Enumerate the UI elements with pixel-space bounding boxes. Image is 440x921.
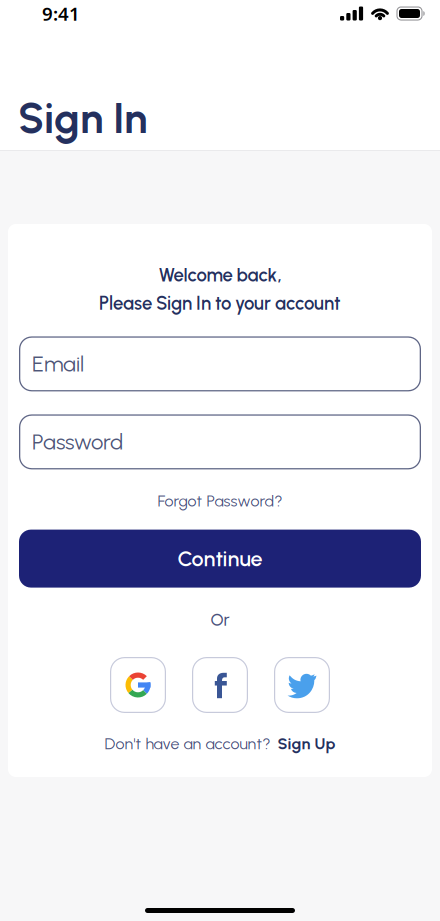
staticText: Forgot Password? [157,491,282,511]
staticText: 9:41 [42,1,80,26]
button[interactable]: Email [19,336,421,391]
staticText: Password [32,429,123,455]
button[interactable]: Sign in with Google [110,657,166,713]
staticText: Welcome back, [158,264,281,286]
staticText: Continue [177,546,262,571]
button[interactable]: Sign in with Twitter [274,657,330,713]
staticText: Please Sign In to your account [99,292,341,314]
button[interactable]: Sign Up [277,734,335,753]
staticText: Email [32,351,84,377]
staticText: Sign In [18,93,147,143]
button[interactable]: Forgot Password? [157,491,282,511]
staticText: Sign Up [277,734,335,753]
button[interactable]: Sign in with Facebook [192,657,248,713]
staticText: Or [210,610,229,630]
button[interactable]: Password [19,414,421,469]
staticText: Don't have an account? [104,734,270,753]
button[interactable]: Continue [19,530,421,588]
